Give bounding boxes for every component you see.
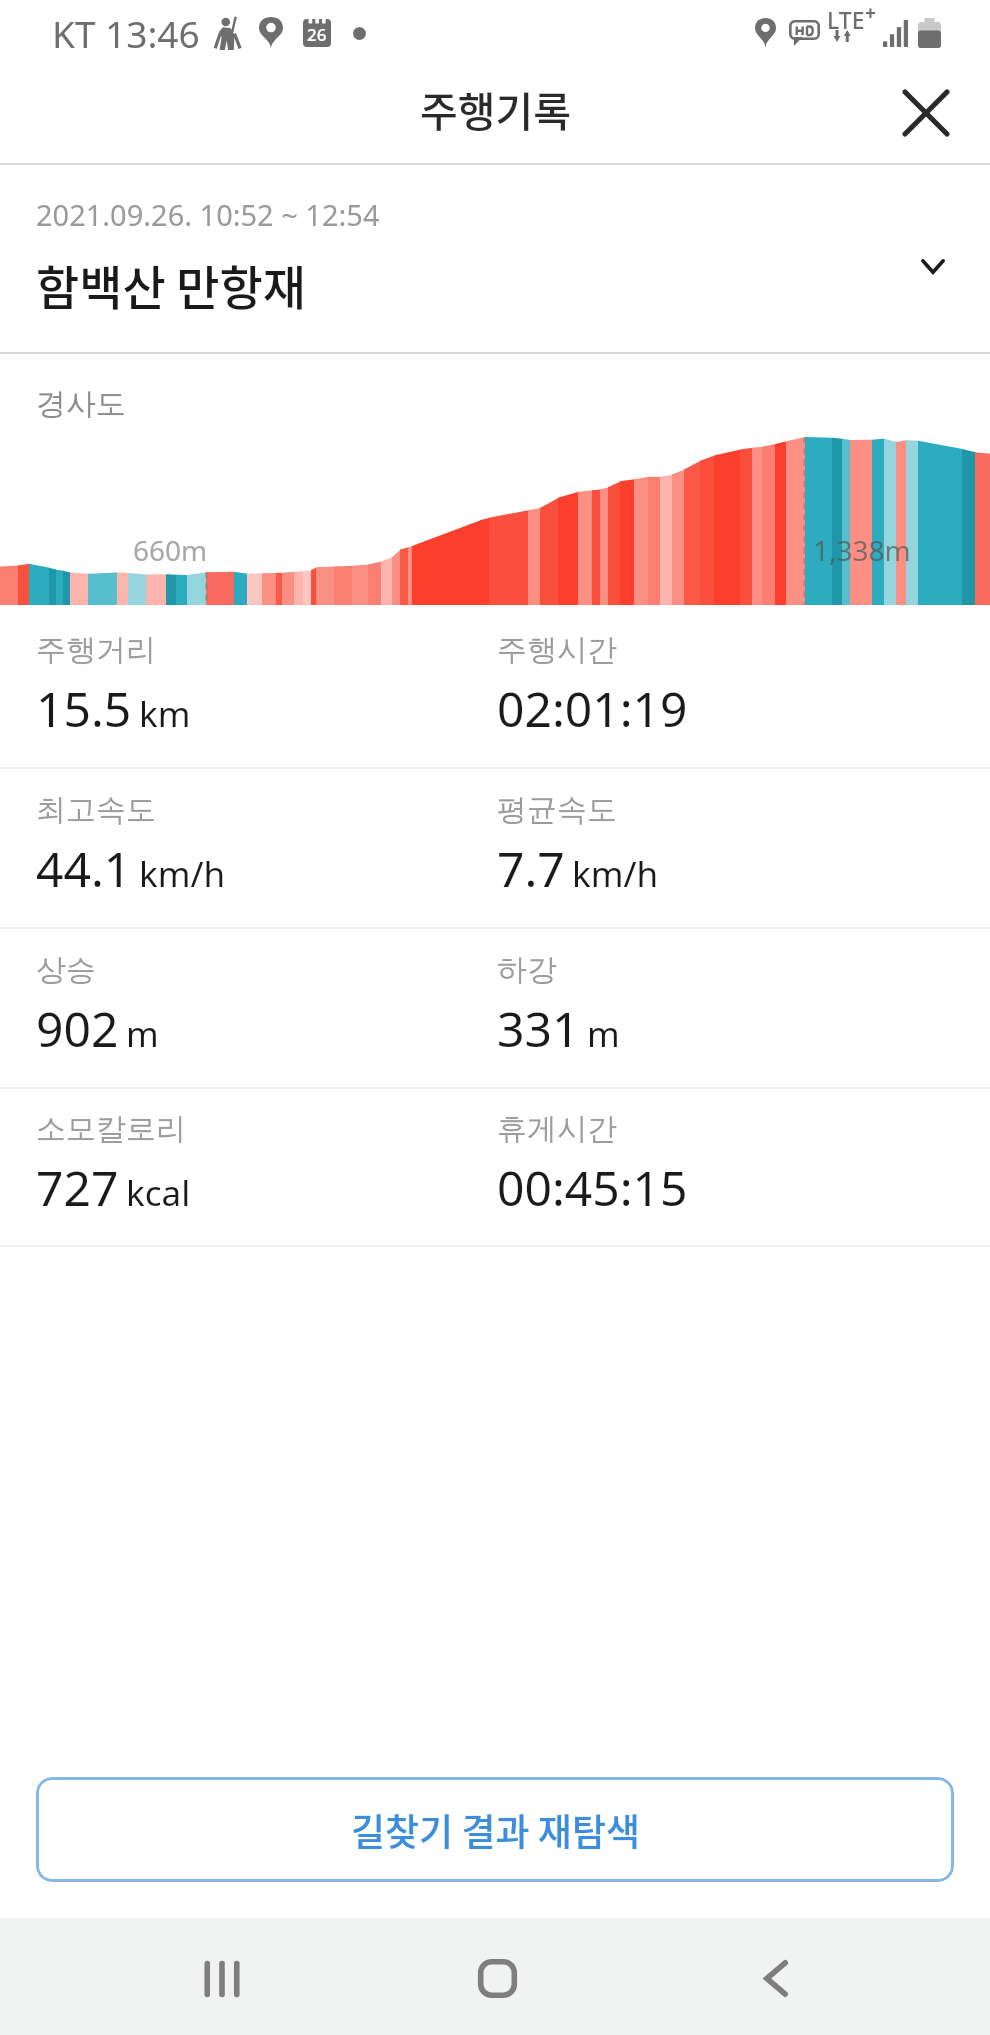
button[interactable]: 길찾기 결과 재탐색 <box>36 1777 954 1882</box>
button[interactable]: Back <box>693 1918 859 2035</box>
staticText: 2021.09.26. 10:52 ~ 12:54 <box>36 195 380 234</box>
staticText: 상승 <box>36 951 96 989</box>
staticText: 44.1 <box>36 836 132 901</box>
staticText: 15.5 <box>36 676 132 741</box>
staticText: 727 <box>36 1155 119 1220</box>
staticText: 주행거리 <box>36 631 156 669</box>
staticText: km/h <box>139 850 226 898</box>
staticText: 소모칼로리 <box>36 1110 186 1148</box>
staticText: 331 <box>497 996 580 1061</box>
staticText: 7.7 <box>497 836 565 901</box>
staticText: 1,338m <box>813 531 911 569</box>
staticText: 함백산 만항재 <box>36 250 307 318</box>
staticText: 평균속도 <box>497 791 617 829</box>
staticText: m <box>587 1010 620 1058</box>
staticText: 00:45:15 <box>497 1155 688 1220</box>
staticText: 660m <box>133 531 208 569</box>
staticText: km <box>139 690 191 738</box>
button[interactable]: Close <box>882 71 970 159</box>
button[interactable]: Home <box>414 1918 580 2035</box>
staticText: 02:01:19 <box>497 676 688 741</box>
staticText: 길찾기 결과 재탐색 <box>351 1803 640 1857</box>
staticText: KT 13:46 <box>52 8 200 58</box>
staticText: kcal <box>126 1169 191 1217</box>
staticText: 하강 <box>497 951 557 989</box>
staticText: 주행시간 <box>497 631 617 669</box>
staticText: 26 <box>307 23 327 46</box>
staticText: km/h <box>572 850 659 898</box>
button[interactable]: 2021.09.26. 10:52 ~ 12:54 <box>0 165 990 352</box>
staticText: LTE <box>827 4 865 35</box>
staticText: 휴게시간 <box>497 1110 617 1148</box>
staticText: + <box>865 0 874 26</box>
staticText: 최고속도 <box>36 791 156 829</box>
staticText: 경사도 <box>36 385 126 423</box>
button[interactable]: Recent apps <box>139 1918 305 2035</box>
staticText: 902 <box>36 996 119 1061</box>
staticText: m <box>126 1010 159 1058</box>
staticText: 주행기록 <box>420 79 571 138</box>
